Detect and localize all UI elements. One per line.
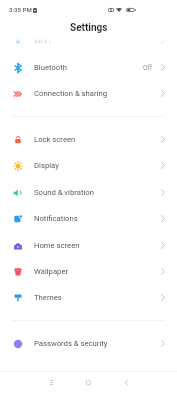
button[interactable]: Notifications — [0, 205, 177, 232]
staticText: Connection & sharing — [34, 89, 108, 98]
button[interactable]: Themes — [0, 284, 177, 311]
button[interactable]: Passwords & security — [0, 330, 177, 357]
button[interactable]: Recent apps — [36, 371, 66, 394]
staticText: Display — [34, 161, 59, 170]
button[interactable]: Connection & sharing — [0, 80, 177, 107]
button[interactable]: Wallpaper — [0, 258, 177, 285]
staticText: Settings — [70, 22, 108, 34]
staticText: Themes — [34, 293, 62, 302]
staticText: Passwords & security — [34, 339, 108, 348]
staticText: Sound & vibration — [34, 188, 94, 197]
button[interactable]: Sound & vibration — [0, 179, 177, 206]
staticText: 3:35 PM — [9, 6, 32, 13]
staticText: Notifications — [34, 214, 78, 223]
button[interactable]: Wi-Fi — [0, 27, 177, 54]
button[interactable]: Display — [0, 152, 177, 179]
staticText: Lock screen — [34, 135, 76, 144]
button[interactable]: Home screen — [0, 232, 177, 259]
button[interactable]: Back — [111, 371, 141, 394]
button[interactable]: Bluetooth — [0, 54, 177, 81]
staticText: Bluetooth — [34, 63, 67, 72]
button[interactable]: Home — [73, 371, 103, 394]
button[interactable]: Lock screen — [0, 126, 177, 153]
staticText: Home screen — [34, 241, 80, 250]
staticText: Off — [143, 64, 153, 72]
staticText: Wallpaper — [34, 267, 69, 276]
staticText: Wi-Fi — [34, 36, 51, 45]
